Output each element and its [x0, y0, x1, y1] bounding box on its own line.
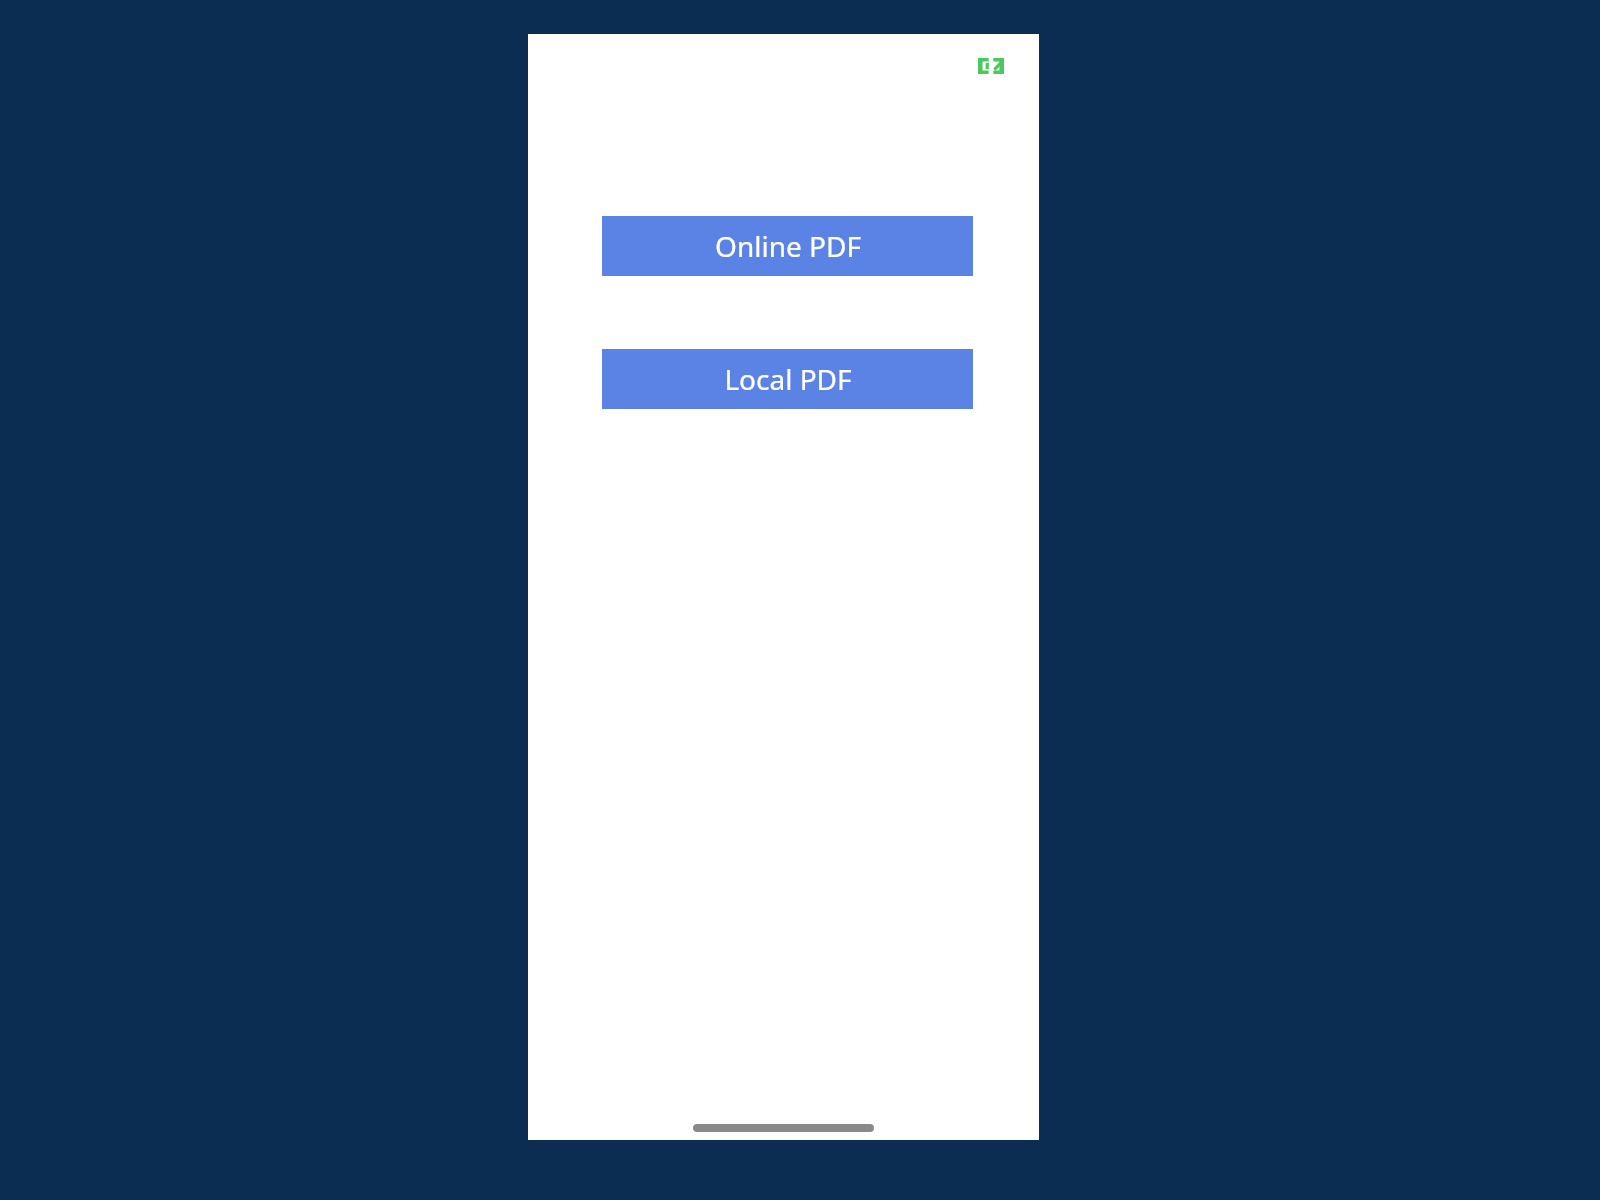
staticText: Local PDF: [724, 360, 852, 398]
button[interactable]: Local PDF: [602, 349, 973, 409]
staticText: Online PDF: [715, 227, 861, 265]
button[interactable]: Online PDF: [602, 216, 973, 276]
button[interactable]: Inspect: [975, 51, 1007, 81]
